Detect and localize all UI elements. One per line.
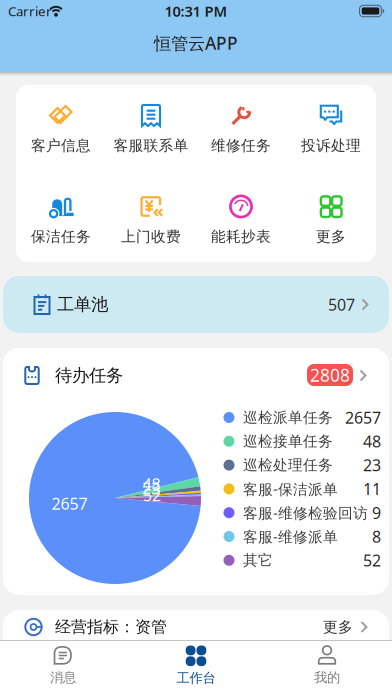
staticText: 52	[363, 550, 381, 571]
staticText: 507	[328, 294, 355, 315]
staticText: 9	[372, 502, 381, 523]
staticText: 2808	[310, 363, 350, 386]
button[interactable]: 保洁任务	[15, 188, 107, 250]
staticText: 巡检处理任务	[243, 456, 333, 474]
staticText: 23	[142, 477, 160, 499]
staticText: 维修任务	[211, 136, 271, 154]
button[interactable]: 经营指标：资管	[3, 610, 389, 656]
staticText: 客服-维修检验回访	[243, 503, 368, 522]
staticText: Carrier	[8, 2, 52, 20]
staticText: 我的	[314, 669, 340, 686]
button[interactable]: 工单池	[3, 276, 389, 333]
staticText: 能耗抄表	[211, 227, 271, 245]
staticText: 投诉处理	[301, 136, 361, 154]
button[interactable]: 客户信息	[15, 97, 107, 159]
button[interactable]: 维修任务	[195, 97, 287, 159]
staticText: 2657	[345, 407, 381, 428]
staticText: 11	[363, 478, 381, 499]
staticText: 52	[143, 484, 161, 506]
button[interactable]: 上门收费	[105, 188, 197, 250]
button[interactable]: 待办任务	[3, 348, 389, 403]
staticText: 其它	[243, 551, 273, 569]
button[interactable]: 能耗抄表	[195, 188, 287, 250]
staticText: 工单池	[57, 294, 108, 315]
staticText: 更多	[316, 227, 346, 245]
staticText: 消息	[50, 669, 76, 686]
staticText: 保洁任务	[31, 227, 91, 245]
staticText: 48	[363, 431, 381, 452]
button[interactable]: 工作台	[151, 640, 241, 690]
staticText: 巡检接单任务	[243, 432, 333, 450]
staticText: 更多	[323, 618, 353, 636]
staticText: 待办任务	[55, 365, 123, 386]
staticText: 客服-保洁派单	[243, 479, 338, 499]
staticText: 10:31 PM	[164, 1, 227, 21]
staticText: 巡检派单任务	[243, 408, 333, 426]
staticText: 23	[363, 454, 381, 476]
staticText: 上门收费	[121, 227, 181, 245]
staticText: 8	[372, 526, 381, 547]
button[interactable]: 客服联系单	[105, 97, 197, 159]
staticText: 客服联系单	[113, 136, 188, 154]
staticText: 48	[142, 473, 160, 495]
staticText: 经营指标：资管	[55, 617, 167, 637]
button[interactable]: 我的	[282, 640, 372, 690]
button[interactable]: 消息	[18, 640, 108, 690]
staticText: 恒管云APP	[154, 31, 238, 54]
button[interactable]: 投诉处理	[285, 97, 377, 159]
staticText: 工作台	[176, 670, 215, 686]
staticText: 客服-维修派单	[243, 527, 338, 546]
button[interactable]: 更多	[285, 188, 377, 250]
staticText: 客户信息	[31, 136, 91, 154]
staticText: 2657	[51, 493, 87, 514]
